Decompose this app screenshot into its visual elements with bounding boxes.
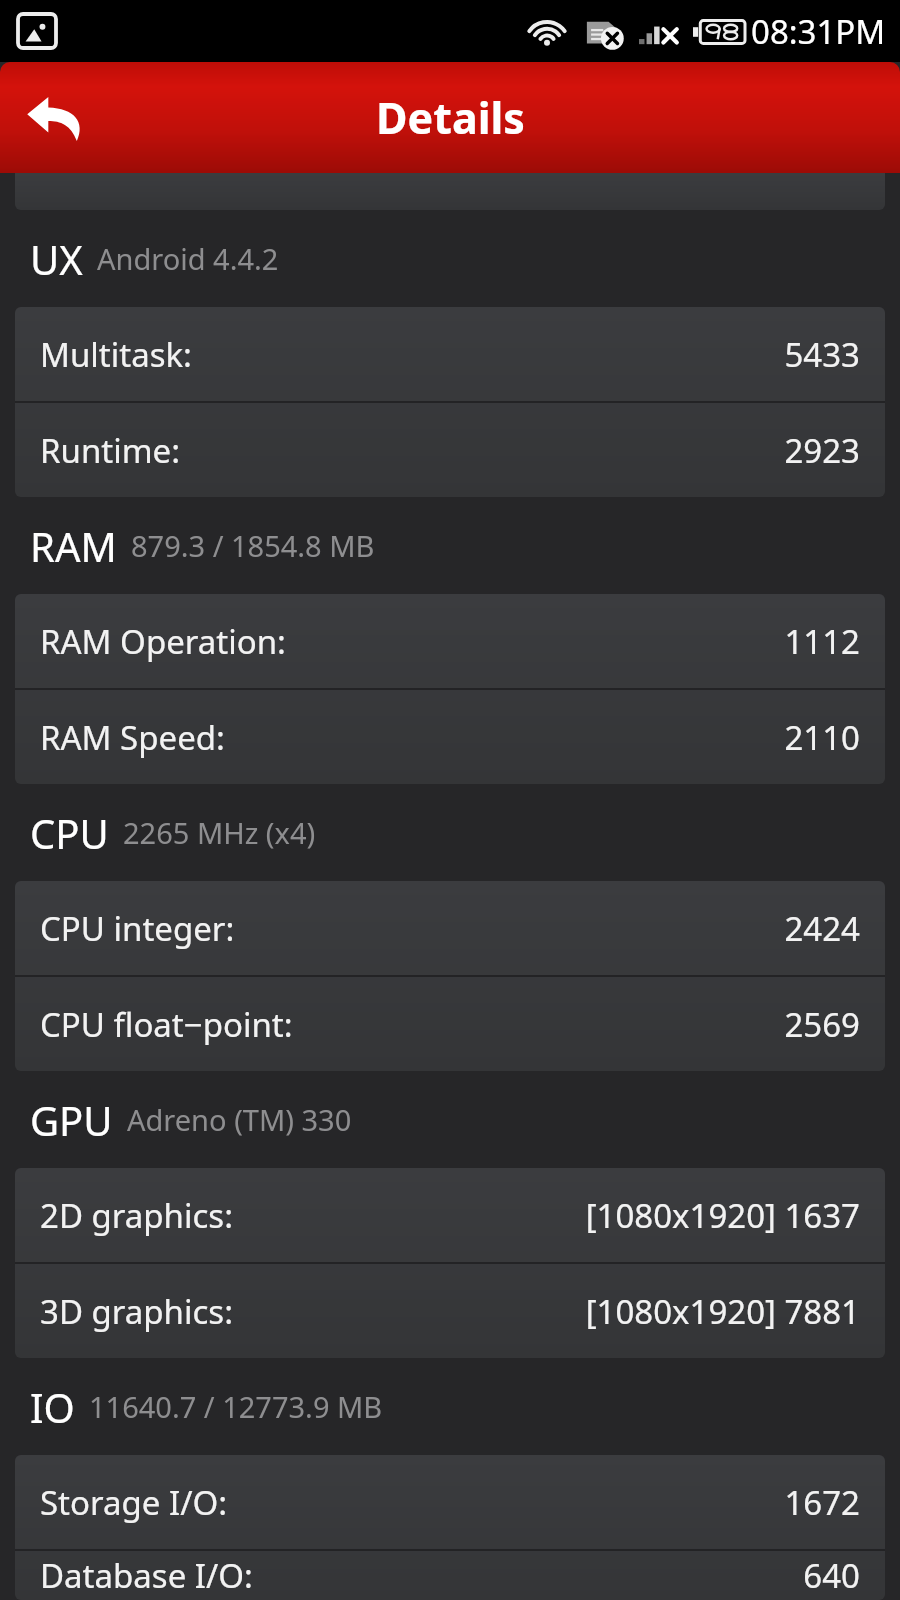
staticText: 5433	[784, 332, 860, 377]
button[interactable]: 2D graphics:	[15, 1168, 885, 1262]
staticText: 1112	[784, 619, 860, 664]
button[interactable]: RAM Speed:	[15, 690, 885, 784]
staticText: Android 4.4.2	[97, 239, 279, 278]
staticText: 879.3 / 1854.8 MB	[131, 526, 375, 565]
staticText: Multitask:	[40, 332, 192, 377]
staticText: Adreno (TM) 330	[127, 1100, 352, 1139]
button[interactable]: CPU integer:	[15, 881, 885, 975]
button[interactable]: 3D graphics:	[15, 1264, 885, 1358]
staticText: GPU	[30, 1093, 113, 1147]
button[interactable]: Multitask:	[15, 307, 885, 401]
staticText: 640	[803, 1553, 860, 1598]
staticText: RAM Speed:	[40, 715, 225, 760]
staticText: Details	[376, 88, 525, 147]
staticText: UX	[30, 232, 83, 286]
staticText: CPU float−point:	[40, 1002, 293, 1047]
button[interactable]: Runtime:	[15, 403, 885, 497]
staticText: 08:31PM	[751, 9, 886, 54]
staticText: 2569	[784, 1002, 860, 1047]
staticText: RAM Operation:	[40, 619, 286, 664]
staticText: 11640.7 / 12773.9 MB	[89, 1387, 383, 1426]
staticText: IO	[30, 1380, 75, 1434]
button[interactable]: RAM Operation:	[15, 594, 885, 688]
staticText: 2265 MHz (x4)	[123, 813, 316, 852]
staticText: CPU integer:	[40, 906, 235, 951]
staticText: [1080x1920] 1637	[585, 1193, 860, 1238]
staticText: 2424	[784, 906, 860, 951]
button[interactable]: Back	[20, 85, 94, 151]
staticText: Runtime:	[40, 428, 181, 473]
staticText: 1672	[784, 1480, 860, 1525]
staticText: 2D graphics:	[40, 1193, 234, 1238]
staticText: [1080x1920] 7881	[585, 1289, 860, 1334]
button[interactable]: Storage I/O:	[15, 1455, 885, 1549]
staticText: 2110	[784, 715, 860, 760]
staticText: 2923	[784, 428, 860, 473]
button[interactable]: Database I/O:	[15, 1551, 885, 1600]
staticText: CPU	[30, 806, 109, 860]
staticText: Storage I/O:	[40, 1480, 228, 1525]
staticText: 3D graphics:	[40, 1289, 234, 1334]
staticText: RAM	[30, 519, 117, 573]
button[interactable]: CPU float−point:	[15, 977, 885, 1071]
staticText: Database I/O:	[40, 1553, 253, 1598]
